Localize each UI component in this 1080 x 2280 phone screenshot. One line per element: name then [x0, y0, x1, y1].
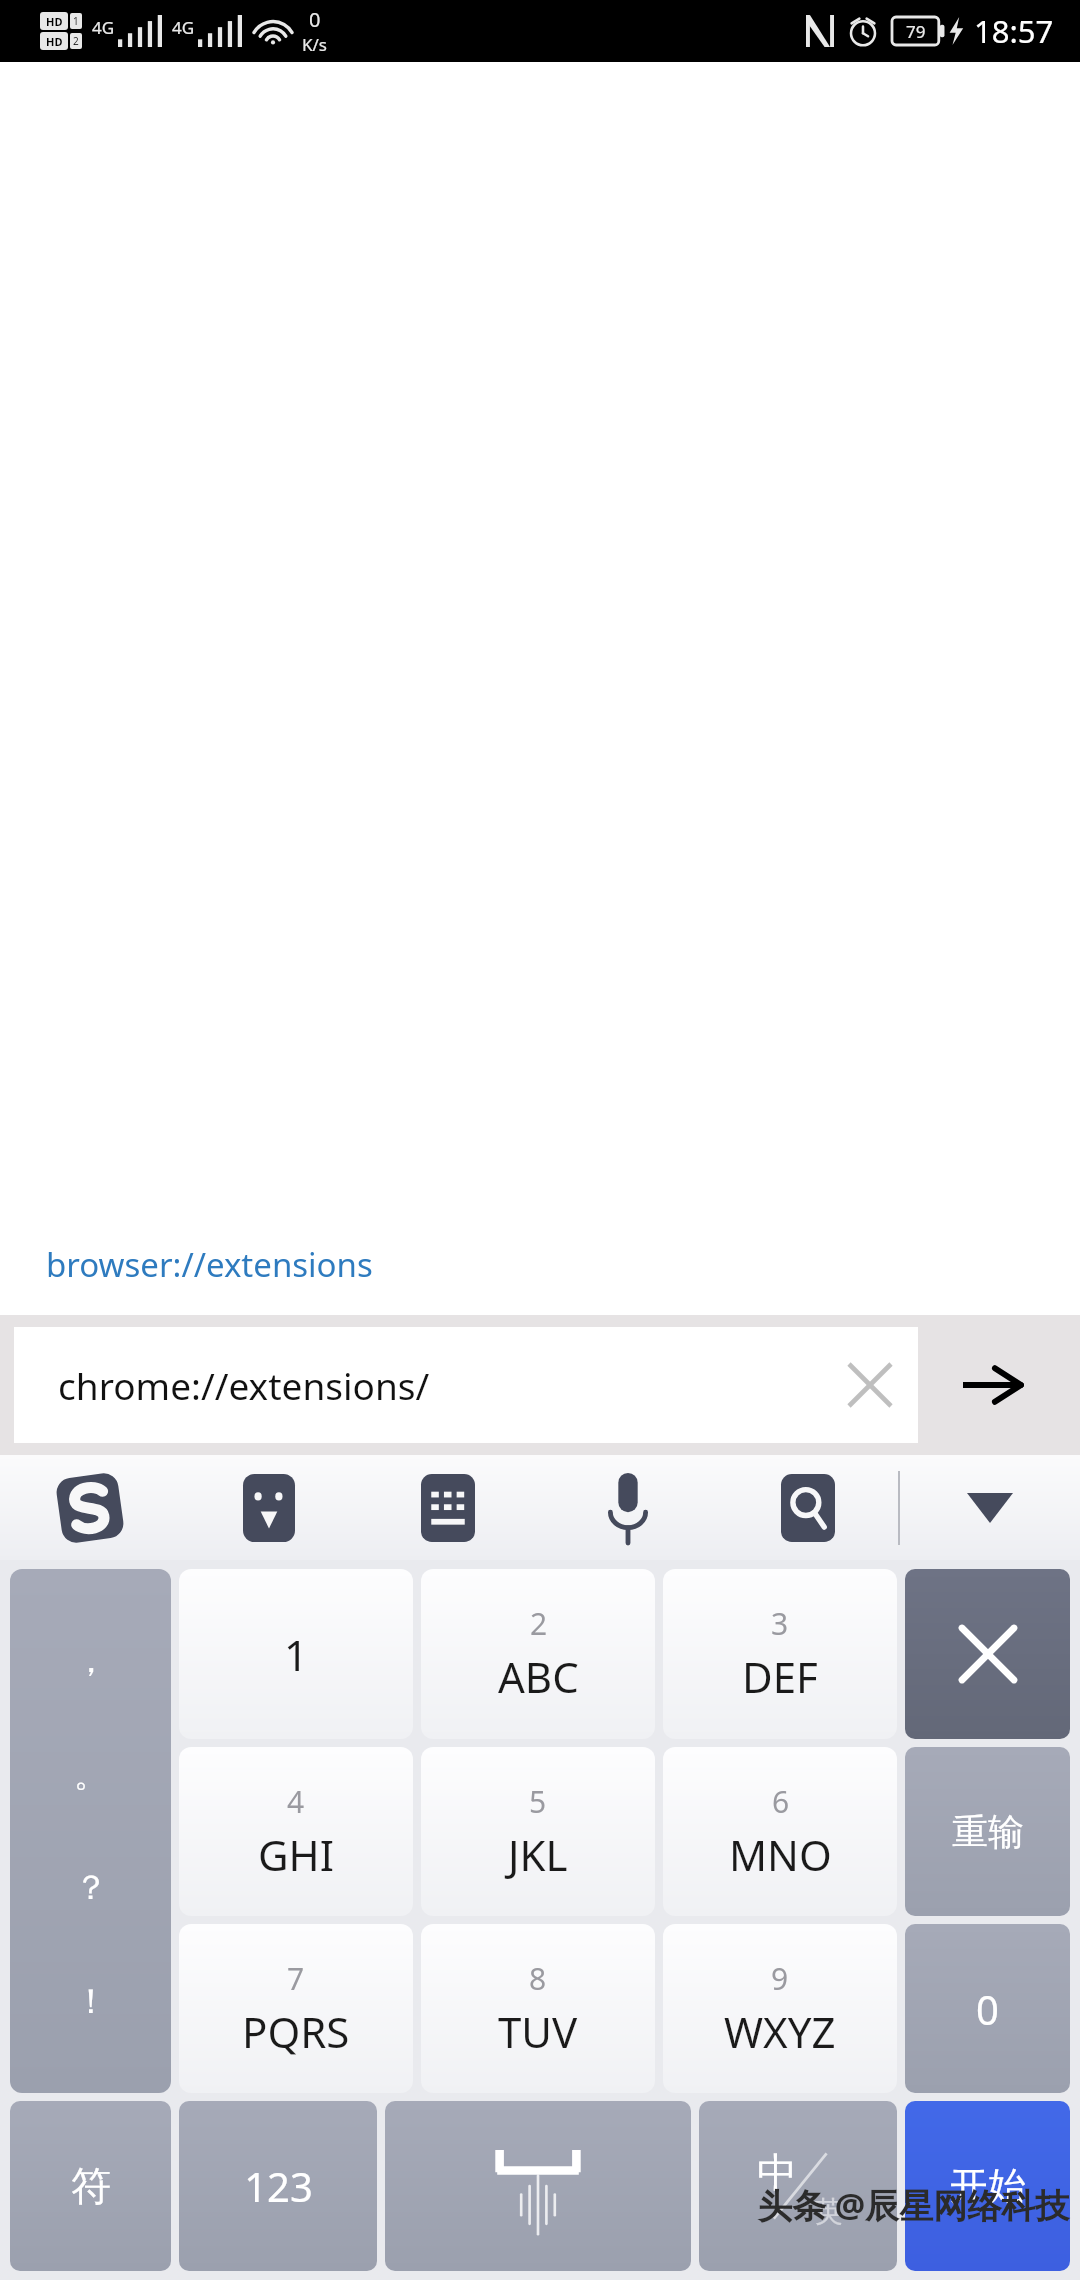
staticText: MNO: [729, 1826, 832, 1883]
staticText: DEF: [742, 1648, 818, 1705]
staticText: 5: [529, 1781, 547, 1822]
staticText: 头条 @辰星网络科技: [758, 2182, 1070, 2228]
button[interactable]: Keyboard layout: [358, 1455, 538, 1560]
button[interactable]: Emoji: [179, 1455, 358, 1560]
staticText: 重输: [952, 1809, 1024, 1854]
staticText: K/s: [302, 33, 327, 56]
button[interactable]: Backspace: [905, 1569, 1070, 1739]
staticText: HD: [46, 14, 63, 29]
staticText: PQRS: [242, 2003, 350, 2060]
button[interactable]: 1: [179, 1569, 413, 1739]
button[interactable]: Space: [385, 2101, 691, 2271]
staticText: 4G: [172, 16, 195, 39]
staticText: 4G: [92, 16, 115, 39]
button[interactable]: 符: [10, 2101, 171, 2271]
staticText: 18:57: [974, 10, 1054, 52]
button[interactable]: browser://extensions: [46, 1242, 373, 1287]
button[interactable]: Voice input: [538, 1455, 718, 1560]
staticText: 中: [757, 2147, 797, 2197]
staticText: 7: [287, 1958, 305, 1999]
button[interactable]: 5: [421, 1747, 655, 1916]
staticText: 79: [906, 20, 926, 43]
button[interactable]: ，: [10, 1569, 171, 2093]
button[interactable]: 2: [421, 1569, 655, 1739]
staticText: 2: [73, 34, 79, 48]
staticText: 8: [529, 1958, 547, 1999]
staticText: 符: [71, 2161, 111, 2211]
staticText: ！: [74, 1980, 108, 2023]
staticText: WXYZ: [724, 2003, 836, 2060]
staticText: 0: [976, 1982, 999, 2036]
staticText: ABC: [498, 1648, 579, 1705]
button[interactable]: Go: [918, 1327, 1066, 1443]
button[interactable]: chrome://extensions/: [14, 1327, 918, 1443]
button[interactable]: 重输: [905, 1747, 1070, 1916]
staticText: 0: [309, 6, 321, 33]
button[interactable]: 6: [663, 1747, 897, 1916]
staticText: TUV: [498, 2003, 578, 2060]
button[interactable]: 0: [905, 1924, 1070, 2093]
staticText: 4: [287, 1781, 305, 1822]
button[interactable]: 开始: [905, 2101, 1070, 2271]
button[interactable]: 8: [421, 1924, 655, 2093]
staticText: 3: [771, 1603, 789, 1644]
staticText: 6: [772, 1781, 790, 1822]
staticText: JKL: [508, 1826, 568, 1883]
staticText: 1: [73, 14, 79, 28]
staticText: ，: [74, 1639, 108, 1682]
button[interactable]: 3: [663, 1569, 897, 1739]
staticText: chrome://extensions/: [58, 1360, 822, 1410]
button[interactable]: 7: [179, 1924, 413, 2093]
staticText: 123: [244, 2159, 313, 2213]
button[interactable]: Chinese English toggle: [699, 2101, 897, 2271]
staticText: 英: [815, 2194, 843, 2229]
button[interactable]: 123: [179, 2101, 377, 2271]
button[interactable]: Search: [718, 1455, 898, 1560]
staticText: 1: [284, 1626, 309, 1683]
staticText: HD: [46, 34, 63, 49]
staticText: 开始: [950, 2162, 1026, 2210]
staticText: 。: [74, 1753, 108, 1796]
staticText: ？: [74, 1866, 108, 1909]
staticText: 2: [530, 1603, 548, 1644]
button[interactable]: Hide keyboard: [900, 1455, 1080, 1560]
button[interactable]: 9: [663, 1924, 897, 2093]
button[interactable]: Clear text: [822, 1337, 918, 1433]
button[interactable]: 4: [179, 1747, 413, 1916]
button[interactable]: Sogou input: [0, 1455, 179, 1560]
staticText: GHI: [258, 1826, 334, 1883]
staticText: 9: [771, 1958, 789, 1999]
